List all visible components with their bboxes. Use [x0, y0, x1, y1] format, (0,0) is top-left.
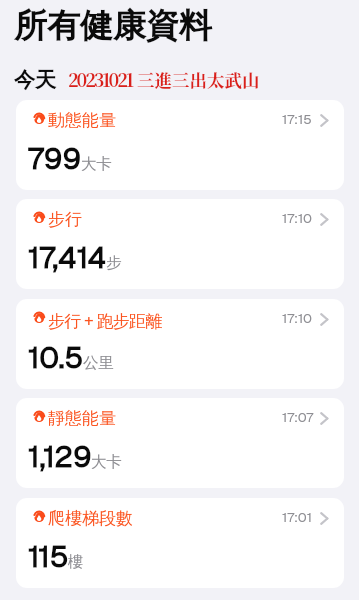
staticText: 17,414 [28, 238, 107, 277]
staticText: 17:01 [282, 508, 312, 526]
staticText: 799 [28, 139, 82, 178]
button[interactable]: 步行 [16, 199, 344, 289]
staticText: 大卡 [81, 154, 112, 174]
staticText: 樓 [68, 552, 84, 572]
button[interactable]: 靜態能量 [16, 398, 344, 488]
staticText: 靜態能量 [48, 408, 116, 429]
staticText: 10.5 [28, 338, 84, 377]
staticText: 公里 [83, 353, 114, 373]
button[interactable]: 爬樓梯段數 [16, 498, 344, 588]
staticText: 所有健康資料 [14, 5, 212, 47]
staticText: 爬樓梯段數 [48, 508, 133, 529]
staticText: 動態能量 [48, 110, 116, 131]
staticText: 今天 [14, 67, 56, 93]
staticText: 步行 + 跑步距離 [48, 309, 162, 332]
staticText: 115 [28, 537, 69, 576]
staticText: 三進三出太武山 [137, 67, 260, 92]
staticText: 20231021 [68, 66, 133, 92]
staticText: 步行 [48, 209, 82, 230]
staticText: 17:15 [282, 110, 312, 128]
staticText: 17:10 [282, 309, 312, 327]
button[interactable]: 步行 + 跑步距離 [16, 299, 344, 389]
staticText: 17:10 [282, 209, 312, 227]
button[interactable]: 動態能量 [16, 100, 344, 190]
staticText: 17:07 [282, 408, 314, 426]
staticText: 大卡 [91, 452, 122, 472]
staticText: 1,129 [28, 437, 92, 476]
staticText: 步 [106, 253, 122, 273]
